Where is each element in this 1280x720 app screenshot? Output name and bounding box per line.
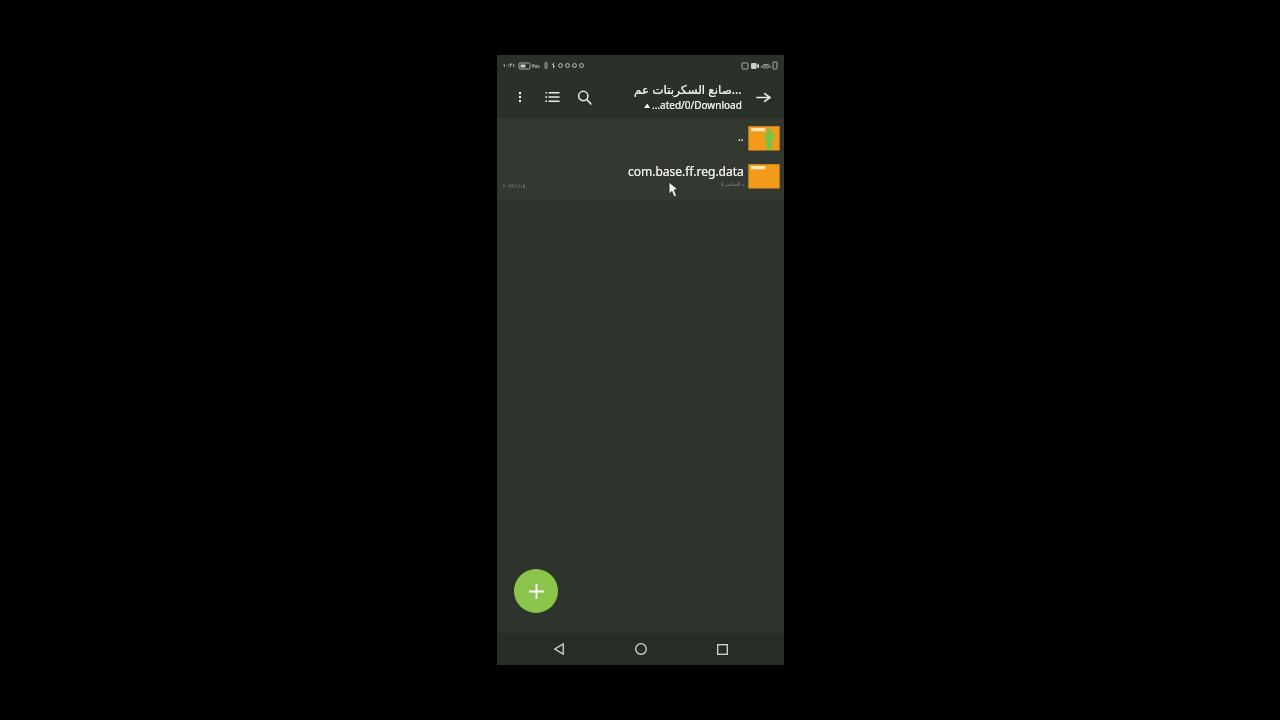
staticText: .. <box>738 130 744 144</box>
button[interactable]: Recents <box>702 633 742 665</box>
staticText: د العناصر ٥ <box>721 181 744 188</box>
staticText: ...ated/0/Download <box>652 98 742 112</box>
button[interactable]: Back <box>539 633 579 665</box>
staticText: صانع السكربتات عم... <box>634 81 742 97</box>
staticText: ٢٠٢٣/١/١٥ <box>503 183 526 190</box>
staticText: ١٠:٢١ <box>503 62 516 69</box>
button[interactable]: .. <box>497 118 784 156</box>
button[interactable]: Search <box>571 84 597 110</box>
staticText: ٣٨٪ <box>532 63 541 69</box>
button[interactable]: ٢٠٢٣/١/١٥ <box>497 156 784 194</box>
button[interactable]: Forward <box>750 84 776 110</box>
button[interactable]: Home <box>621 633 661 665</box>
staticText: com.base.ff.reg.data <box>628 163 744 179</box>
button[interactable]: More options <box>507 84 533 110</box>
button[interactable]: Add <box>514 569 558 613</box>
button[interactable]: View mode <box>539 84 565 110</box>
